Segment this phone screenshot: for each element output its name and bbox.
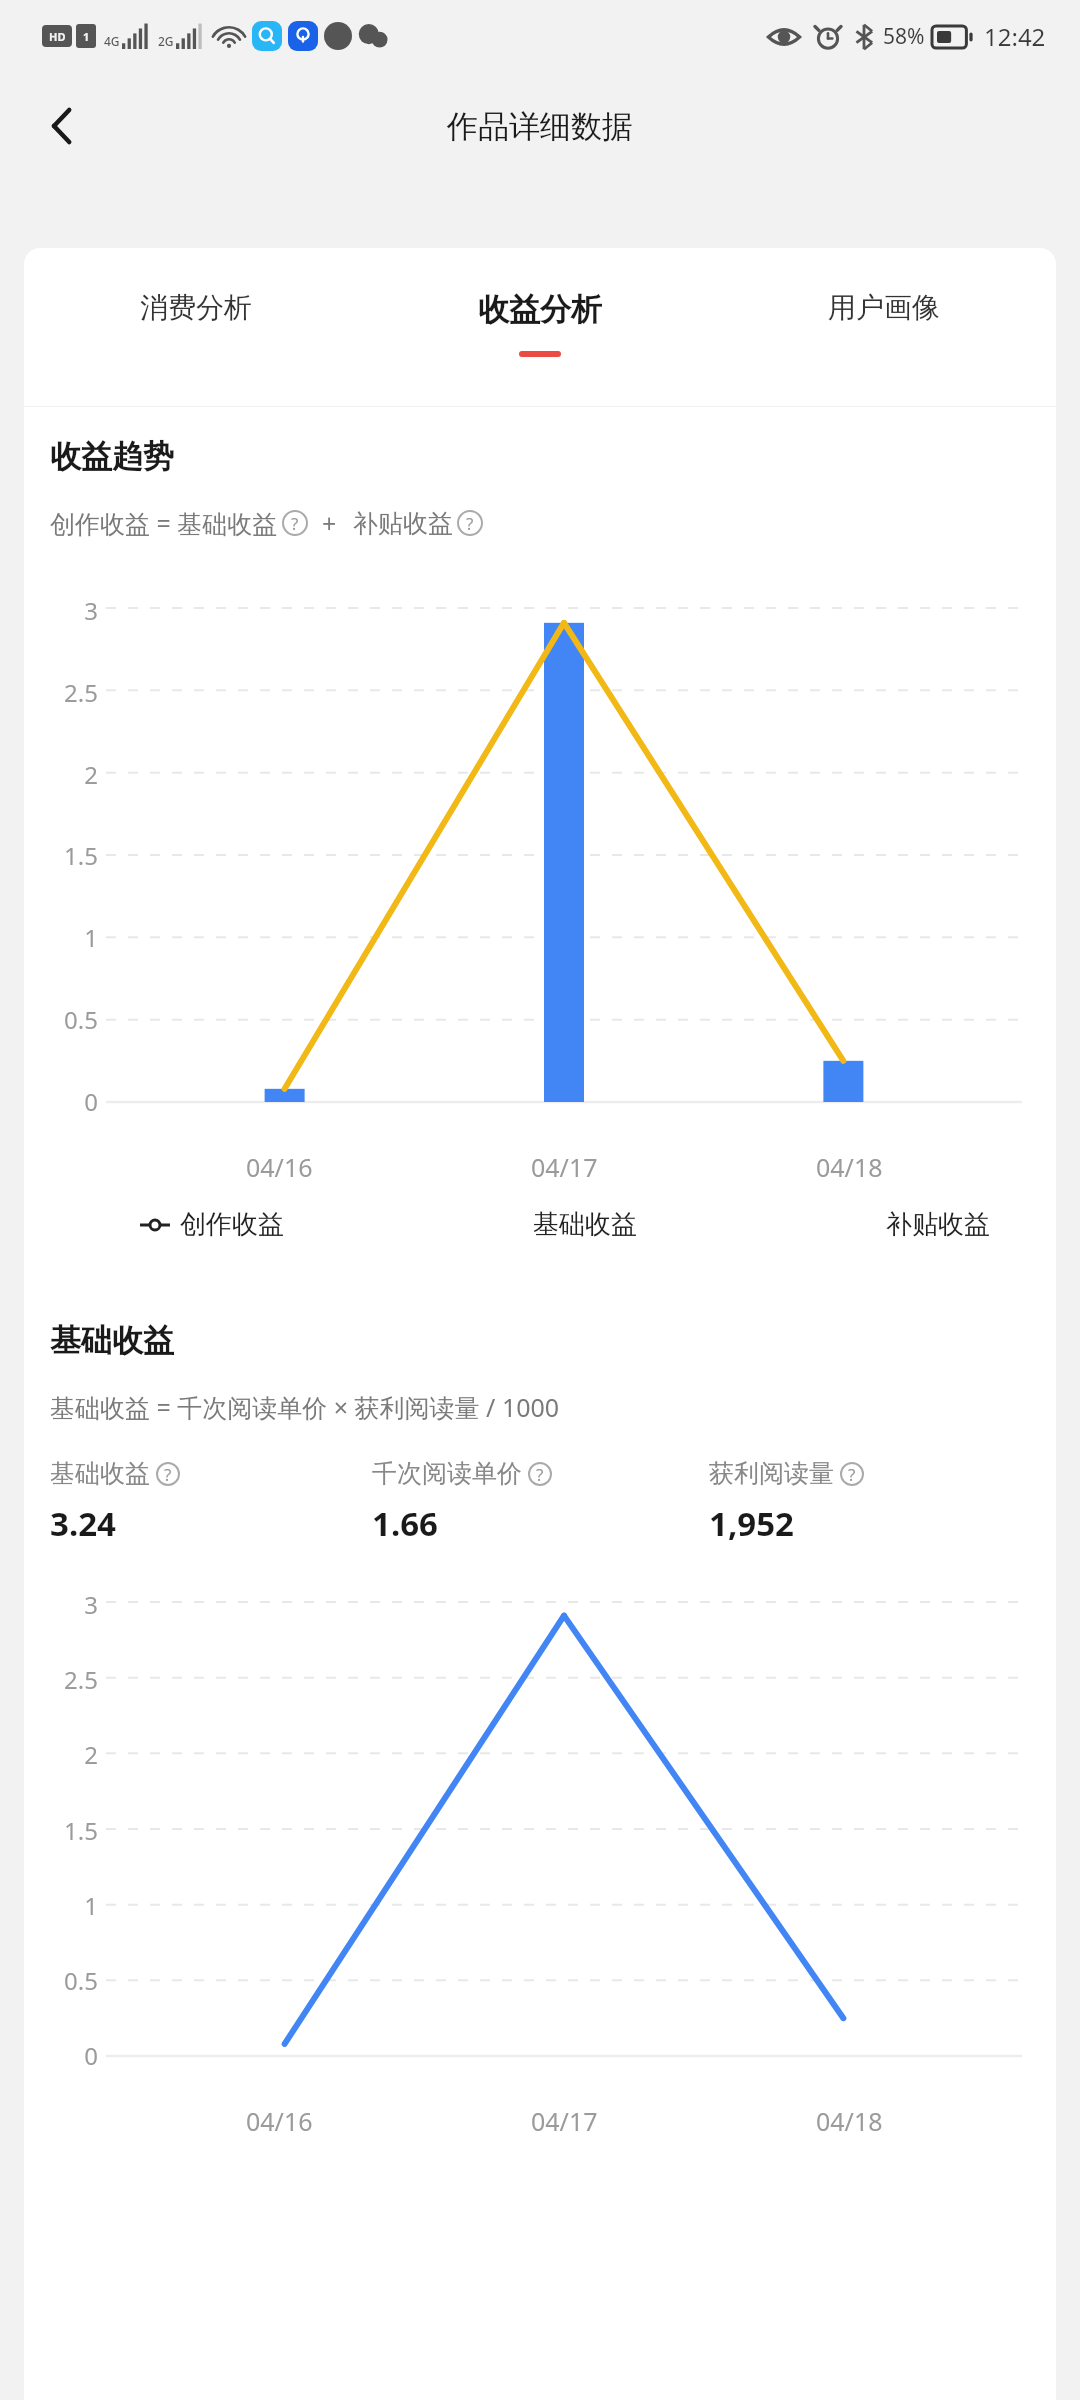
- staticText: 2: [50, 758, 98, 791]
- staticText: ?: [536, 1463, 544, 1486]
- staticText: 3: [50, 1588, 98, 1621]
- staticText: 收益分析: [478, 290, 602, 329]
- button[interactable]: 千次阅读单价: [372, 1458, 709, 1546]
- button[interactable]: 补贴收益: [886, 1208, 990, 1241]
- staticText: 58%: [883, 22, 925, 51]
- staticText: 创作收益: [180, 1208, 284, 1241]
- staticText: 创作收益 = 基础收益: [50, 506, 278, 540]
- staticText: 0: [50, 2039, 98, 2072]
- staticText: 基础收益: [50, 1458, 150, 1489]
- staticText: 1: [50, 921, 98, 954]
- staticText: 04/16: [246, 1150, 313, 1184]
- staticText: 3: [50, 594, 98, 627]
- staticText: 1.5: [50, 1814, 98, 1847]
- staticText: HD: [49, 29, 66, 44]
- staticText: ?: [848, 1463, 856, 1486]
- staticText: 收益趋势: [50, 437, 174, 476]
- staticText: 2: [50, 1738, 98, 1771]
- staticText: 2.5: [50, 1663, 98, 1696]
- staticText: ?: [291, 512, 299, 535]
- staticText: ?: [164, 1463, 172, 1486]
- staticText: +: [322, 506, 337, 540]
- staticText: 0: [50, 1085, 98, 1118]
- staticText: 用户画像: [828, 290, 940, 325]
- staticText: 2G: [158, 33, 174, 49]
- button[interactable]: 基础收益: [533, 1208, 637, 1241]
- staticText: 4G: [104, 33, 120, 49]
- staticText: 04/17: [531, 1150, 598, 1184]
- staticText: 获利阅读量: [709, 1458, 834, 1489]
- staticText: 1.5: [50, 839, 98, 872]
- staticText: 04/17: [531, 2104, 598, 2138]
- staticText: 千次阅读单价: [372, 1458, 522, 1489]
- staticText: 消费分析: [140, 290, 252, 325]
- button[interactable]: 用户画像: [712, 284, 1056, 351]
- staticText: 作品详细数据: [447, 107, 633, 146]
- staticText: 基础收益 = 千次阅读单价 × 获利阅读量 / 1000: [50, 1390, 560, 1424]
- staticText: 04/16: [246, 2104, 313, 2138]
- button[interactable]: Back: [24, 88, 100, 164]
- staticText: 0.5: [50, 1964, 98, 1997]
- button[interactable]: 收益分析: [368, 284, 712, 357]
- staticText: 3.24: [50, 1501, 116, 1546]
- staticText: 补贴收益: [886, 1208, 990, 1241]
- staticText: 1: [83, 29, 90, 44]
- staticText: 基础收益: [533, 1208, 637, 1241]
- staticText: 基础收益: [50, 1321, 174, 1360]
- staticText: 04/18: [816, 1150, 883, 1184]
- staticText: 0.5: [50, 1003, 98, 1036]
- staticText: ?: [466, 512, 474, 535]
- staticText: 1,952: [709, 1501, 794, 1546]
- staticText: 12:42: [984, 20, 1046, 53]
- staticText: 1: [50, 1889, 98, 1922]
- staticText: 04/18: [816, 2104, 883, 2138]
- button[interactable]: 基础收益: [50, 1458, 372, 1546]
- button[interactable]: 获利阅读量: [709, 1458, 1030, 1546]
- staticText: 2.5: [50, 676, 98, 709]
- button[interactable]: 消费分析: [24, 284, 368, 351]
- staticText: 1.66: [372, 1501, 438, 1546]
- button[interactable]: 创作收益: [140, 1208, 284, 1241]
- staticText: 补贴收益: [353, 508, 453, 539]
